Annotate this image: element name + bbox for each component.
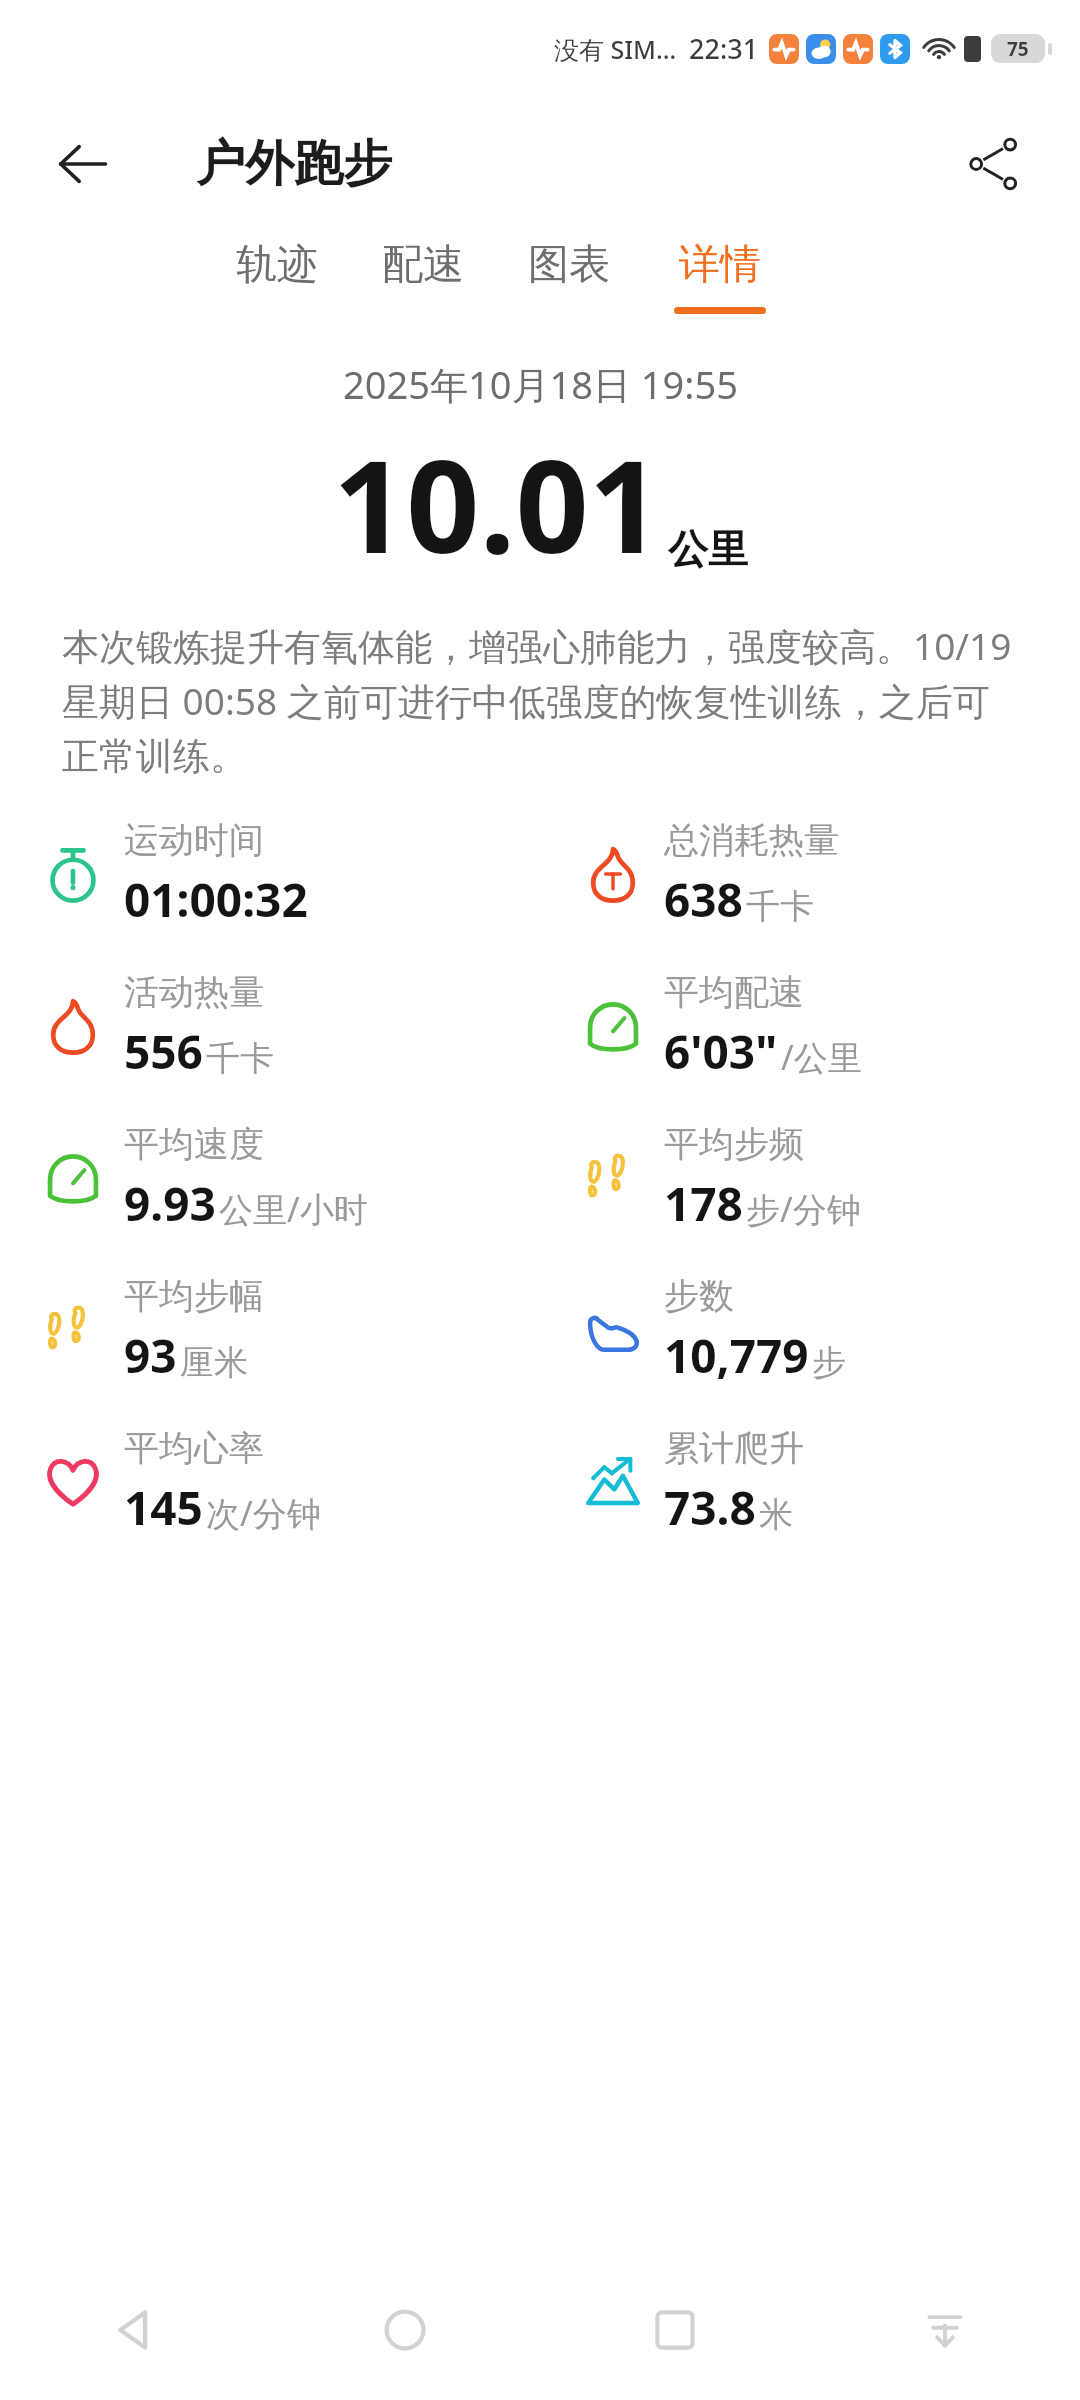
staticText: 米	[759, 1493, 793, 1536]
staticText: 145	[124, 1476, 203, 1539]
button[interactable]: Back	[42, 124, 122, 204]
button[interactable]: 轨迹	[230, 231, 324, 322]
staticText: 轨迹	[236, 239, 318, 291]
button[interactable]: Hide navigation bar	[810, 2260, 1080, 2400]
staticText: 平均心率	[124, 1426, 264, 1470]
button[interactable]: 运动时间	[0, 798, 540, 950]
staticText: 178	[664, 1172, 743, 1235]
button[interactable]: Back	[0, 2260, 270, 2400]
staticText: 千卡	[206, 1037, 274, 1080]
button[interactable]: 配速	[376, 231, 470, 322]
staticText: 公里/小时	[219, 1186, 368, 1232]
staticText: 次/分钟	[206, 1490, 321, 1536]
staticText: 10.01	[333, 416, 662, 590]
staticText: 户外跑步	[196, 133, 392, 195]
button[interactable]: 平均心率	[0, 1406, 540, 1558]
staticText: 配速	[382, 239, 464, 291]
button[interactable]: 平均配速	[540, 950, 1080, 1102]
staticText: 6'03"	[664, 1020, 778, 1083]
staticText: 10,779	[664, 1324, 809, 1387]
staticText: 总消耗热量	[664, 818, 839, 862]
staticText: 638	[664, 868, 743, 931]
staticText: 厘米	[180, 1341, 248, 1384]
staticText: 没有 SIM…	[554, 32, 677, 66]
staticText: 步数	[664, 1274, 734, 1318]
staticText: 22:31	[689, 30, 759, 67]
staticText: 平均步幅	[124, 1274, 264, 1318]
staticText: 73.8	[664, 1476, 756, 1539]
button[interactable]: 活动热量	[0, 950, 540, 1102]
staticText: 9.93	[124, 1172, 216, 1235]
staticText: 活动热量	[124, 970, 264, 1014]
staticText: 2025年10月18日 19:55	[343, 358, 738, 410]
button[interactable]: Home	[270, 2260, 540, 2400]
staticText: 556	[124, 1020, 203, 1083]
button[interactable]: 总消耗热量	[540, 798, 1080, 950]
button[interactable]: 图表	[522, 231, 616, 322]
button[interactable]: 平均步频	[540, 1102, 1080, 1254]
staticText: 千卡	[746, 885, 814, 928]
staticText: 累计爬升	[664, 1426, 804, 1470]
staticText: 详情	[679, 239, 761, 291]
button[interactable]: Share	[952, 122, 1036, 206]
staticText: 步	[812, 1341, 846, 1384]
staticText: 平均速度	[124, 1122, 264, 1166]
button[interactable]: 平均速度	[0, 1102, 540, 1254]
button[interactable]: Recents	[540, 2260, 810, 2400]
staticText: /公里	[781, 1034, 862, 1080]
staticText: 公里	[668, 524, 748, 574]
button[interactable]: 详情	[668, 231, 772, 322]
staticText: 平均配速	[664, 970, 804, 1014]
staticText: 运动时间	[124, 818, 264, 862]
button[interactable]: 累计爬升	[540, 1406, 1080, 1558]
staticText: 01:00:32	[124, 868, 308, 931]
staticText: 图表	[528, 239, 610, 291]
button[interactable]: 平均步幅	[0, 1254, 540, 1406]
staticText: 平均步频	[664, 1122, 804, 1166]
staticText: 步/分钟	[746, 1186, 861, 1232]
staticText: 75	[1007, 36, 1029, 62]
staticText: 93	[124, 1324, 177, 1387]
button[interactable]: 步数	[540, 1254, 1080, 1406]
staticText: 本次锻炼提升有氧体能，增强心肺能力，强度较高。10/19星期日 00:58 之前…	[62, 620, 1018, 780]
